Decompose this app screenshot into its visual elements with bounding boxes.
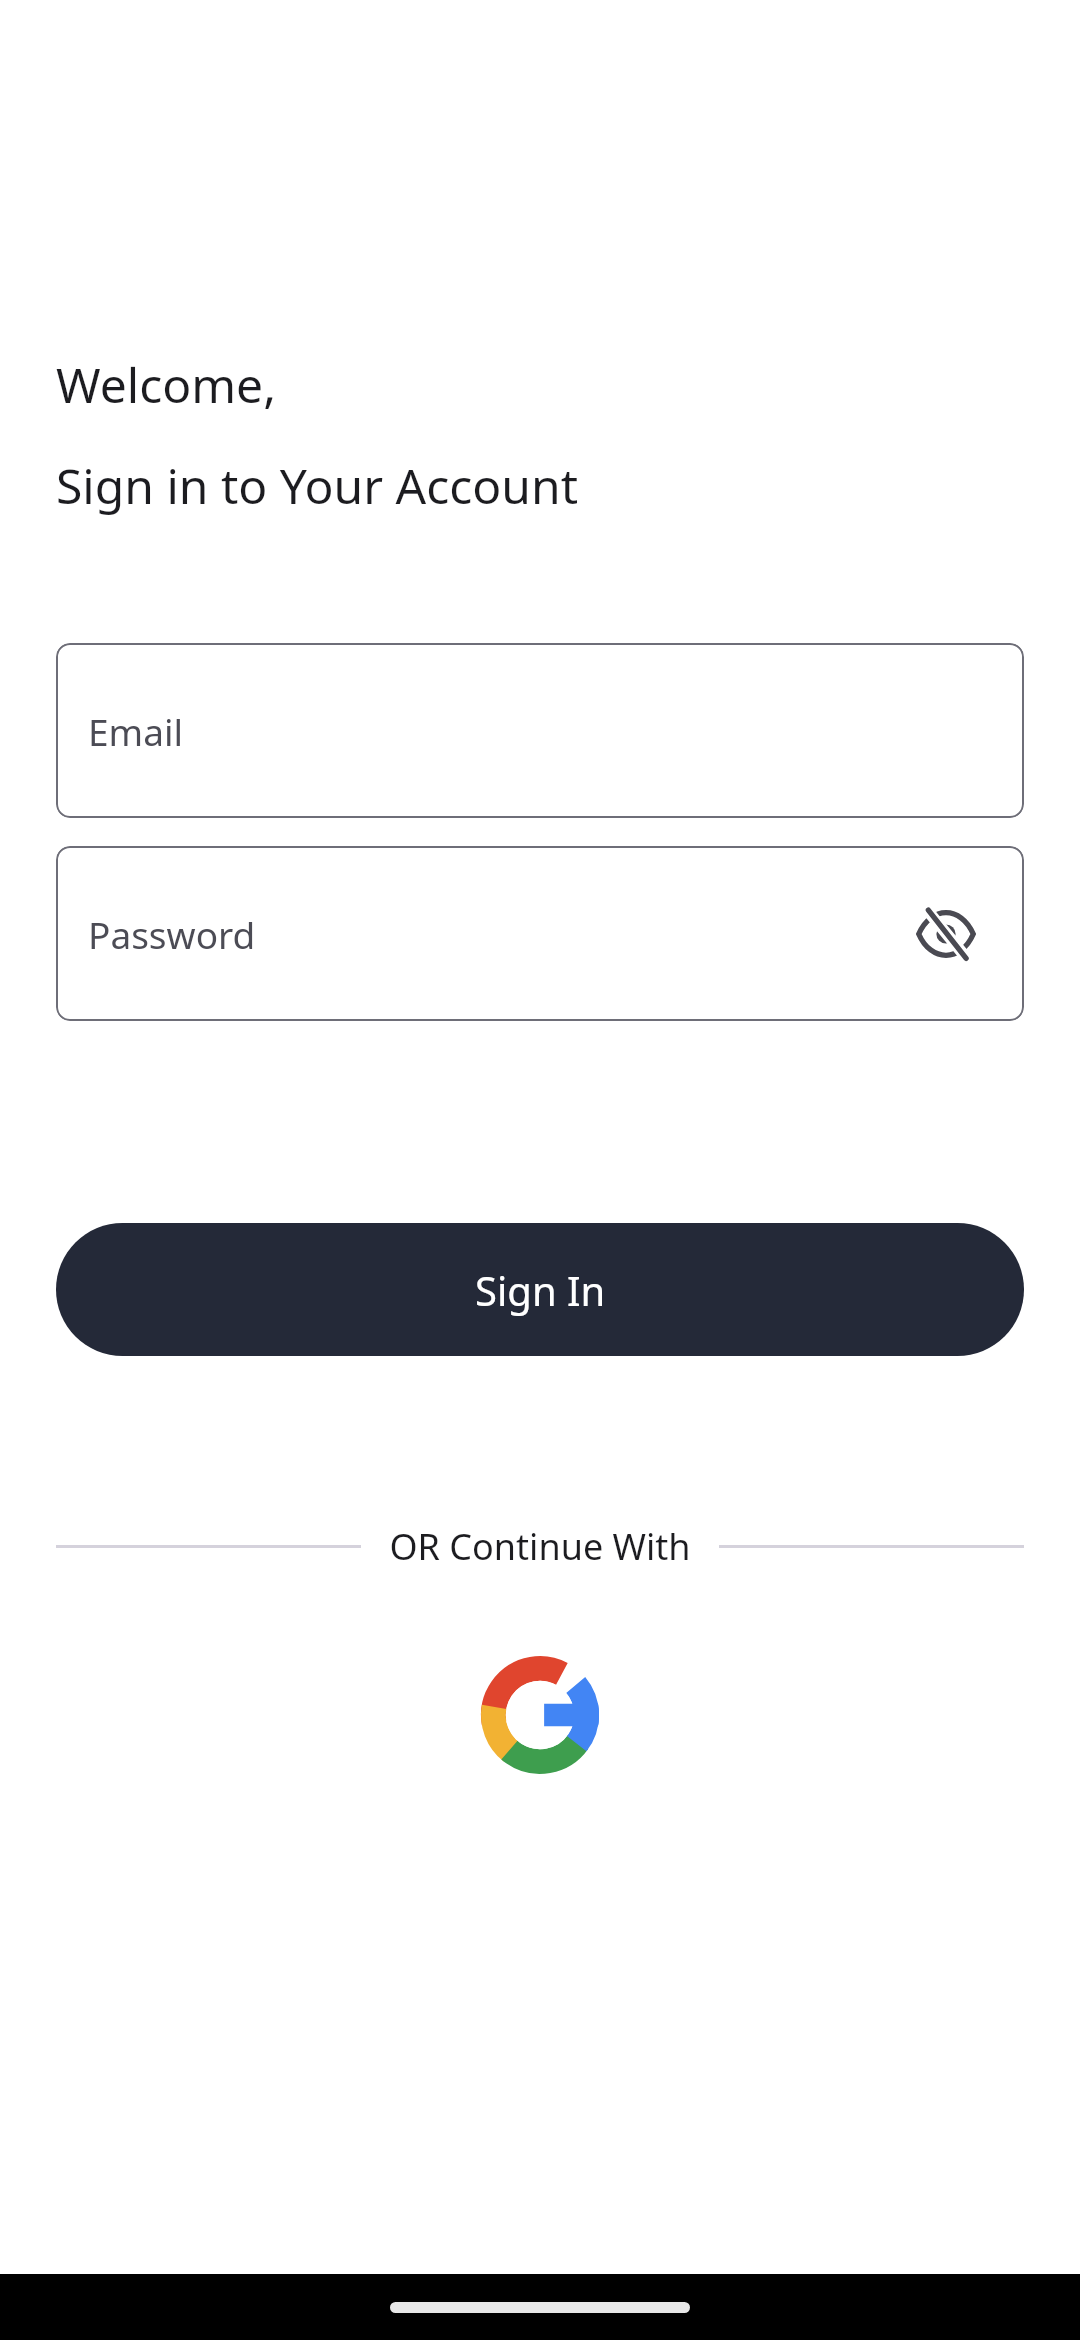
button[interactable]: Password — [56, 846, 1024, 1021]
staticText: Sign In — [475, 1263, 606, 1317]
staticText: Welcome, — [56, 352, 277, 417]
button[interactable]: Continue with Google — [478, 1653, 602, 1777]
staticText: Password — [88, 909, 256, 959]
staticText: Sign in to Your Account — [56, 453, 579, 518]
staticText: OR Continue With — [389, 1522, 691, 1571]
staticText: Email — [88, 706, 184, 756]
button[interactable]: Sign In — [56, 1223, 1024, 1356]
button[interactable]: Show password — [908, 896, 984, 972]
button[interactable]: Email — [56, 643, 1024, 818]
